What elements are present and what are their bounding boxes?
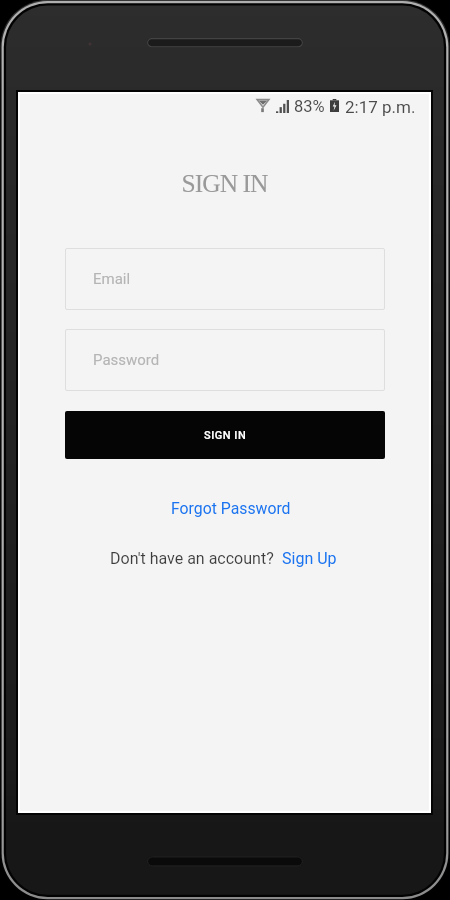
button[interactable]: Password [65,329,385,391]
staticText: Email [93,270,131,288]
button[interactable]: SIGN IN [65,411,385,459]
staticText: SIGN IN [18,169,431,197]
staticText: 83% [294,97,325,116]
staticText: SIGN IN [204,429,247,442]
staticText: Sign Up [282,549,337,568]
button[interactable]: Sign Up [280,544,339,573]
other: Wi-Fi [257,98,269,113]
other: Battery [330,99,339,112]
staticText: 2:17 p.m. [345,97,416,117]
button[interactable]: Email [65,248,385,310]
button[interactable]: Forgot Password [161,494,301,523]
staticText: Password [93,351,160,369]
other: Cellular signal [276,100,289,113]
staticText: Don't have an account? [110,549,274,568]
staticText: Forgot Password [171,499,291,518]
